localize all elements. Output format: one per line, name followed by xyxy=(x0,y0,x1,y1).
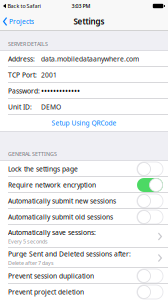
button[interactable]: Back to Safari xyxy=(0,2,40,10)
button[interactable]: Unit ID: xyxy=(0,99,168,115)
staticText: Automatically save sessions: xyxy=(8,228,96,237)
button[interactable]: Automatically submit old sessions xyxy=(0,209,168,225)
staticText: Lock the settings page xyxy=(8,165,78,173)
staticText: Back to Safari xyxy=(7,2,40,10)
staticText: Setup Using QRCode xyxy=(51,119,116,127)
staticText: Every 5 seconds xyxy=(8,238,48,245)
button[interactable]: Password: xyxy=(0,83,168,99)
button[interactable]: Automatically save sessions: xyxy=(0,225,168,248)
staticText: Prevent project deletion xyxy=(8,288,84,296)
staticText: Projects xyxy=(9,17,34,26)
staticText: Address: xyxy=(8,55,35,63)
button[interactable]: Setup Using QRCode xyxy=(0,115,168,131)
staticText: Purge Sent and Deleted sessions after: xyxy=(8,249,131,258)
staticText: 2001 xyxy=(41,71,57,79)
staticText: Delete after 7 days xyxy=(8,259,54,267)
staticText: SERVER DETAILS xyxy=(8,40,48,47)
button[interactable]: Address: xyxy=(0,51,168,67)
staticText: Prevent session duplication xyxy=(8,272,94,280)
staticText: 3:03 PM xyxy=(71,2,90,10)
button[interactable]: Automatically submit new sessions xyxy=(0,193,168,209)
staticText: TCP Port: xyxy=(8,71,37,79)
staticText: Require network encryption xyxy=(8,181,96,189)
staticText: DEMO xyxy=(41,103,61,111)
staticText: Password: xyxy=(8,87,40,95)
button[interactable]: Back to Projects xyxy=(0,17,34,26)
button[interactable]: Lock the settings page xyxy=(0,161,168,177)
button[interactable]: Purge Sent and Deleted sessions after: xyxy=(0,248,168,268)
staticText: Automatically submit new sessions xyxy=(8,197,116,205)
button[interactable]: TCP Port: xyxy=(0,67,168,83)
button[interactable]: Prevent session duplication xyxy=(0,268,168,284)
button[interactable]: Require network encryption xyxy=(0,177,168,193)
staticText: Automatically submit old sessions xyxy=(8,213,113,221)
staticText: ••••••••••••• xyxy=(41,86,80,96)
staticText: Settings xyxy=(73,16,104,27)
staticText: data.mobiledataanywhere.com xyxy=(41,55,139,63)
staticText: Unit ID: xyxy=(8,103,32,111)
staticText: GENERAL SETTINGS xyxy=(8,150,57,157)
button[interactable]: Prevent project deletion xyxy=(0,284,168,300)
